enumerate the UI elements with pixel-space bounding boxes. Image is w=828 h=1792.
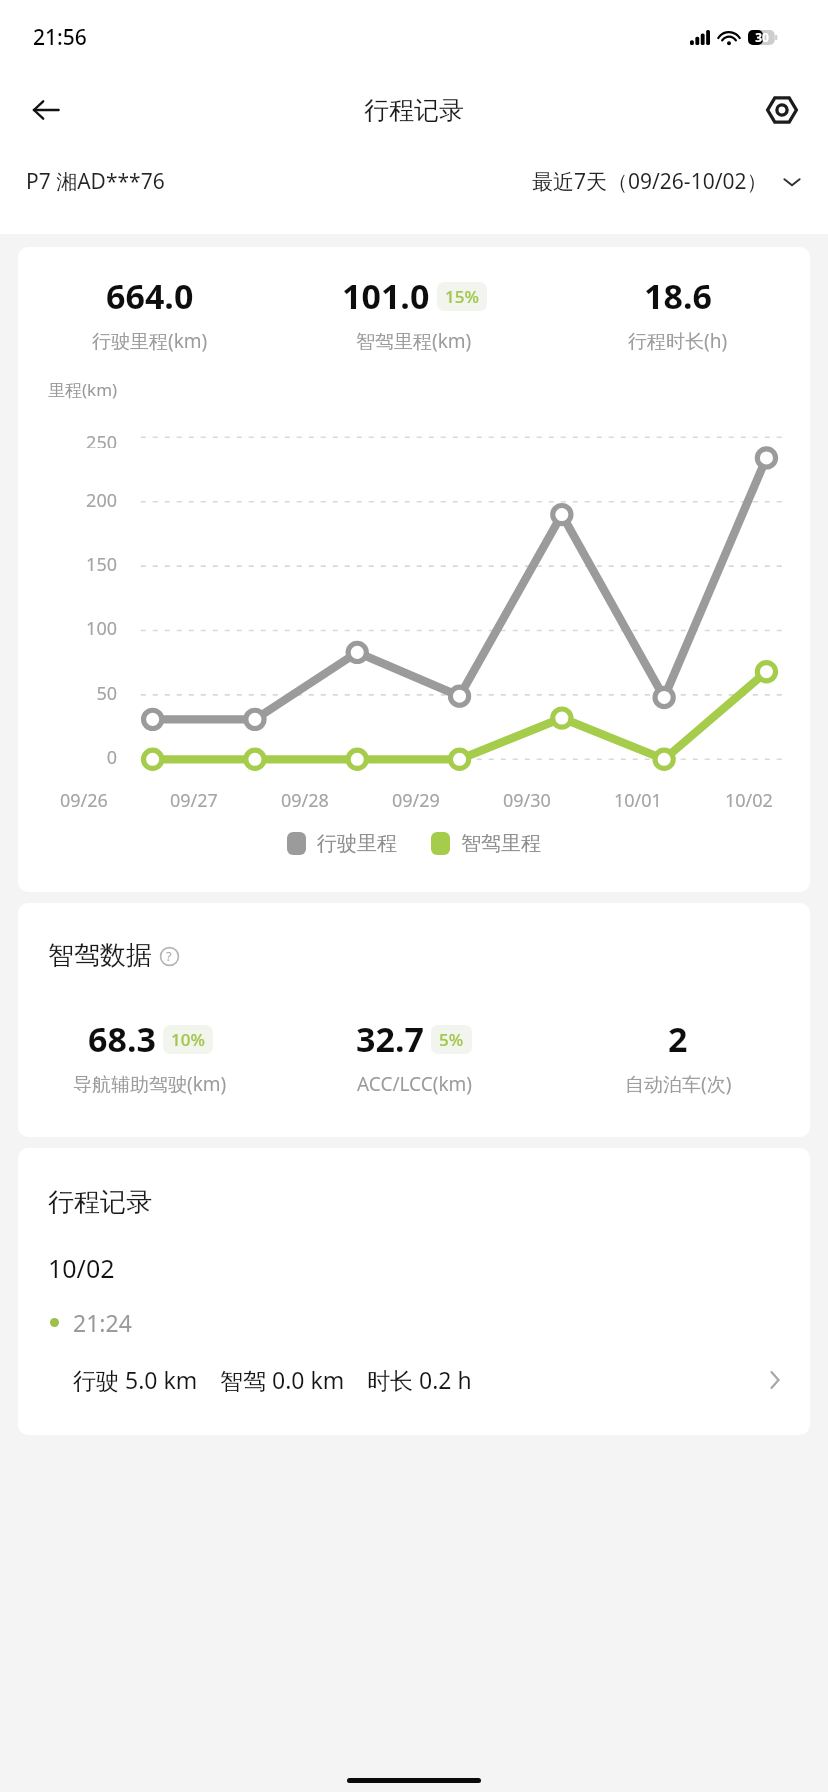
button[interactable]: 最近7天（09/26-10/02） bbox=[532, 167, 802, 196]
staticText: 21:24 bbox=[73, 1307, 132, 1338]
staticText: 09/28 bbox=[281, 788, 329, 813]
staticText: 664.0 bbox=[106, 273, 194, 319]
staticText: 0 bbox=[106, 745, 117, 770]
staticText: 行程记录 bbox=[48, 1186, 152, 1219]
staticText: 行驶 5.0 km bbox=[73, 1364, 198, 1395]
staticText: ACC/LCC(km) bbox=[357, 1071, 472, 1097]
staticText: 30 bbox=[755, 29, 769, 45]
staticText: 10/02 bbox=[48, 1251, 115, 1285]
staticText: 15% bbox=[445, 285, 479, 308]
staticText: ? bbox=[166, 947, 172, 965]
staticText: 32.7 bbox=[356, 1016, 424, 1062]
staticText: 21:56 bbox=[33, 23, 87, 52]
staticText: 68.3 bbox=[88, 1016, 156, 1062]
staticText: 150 bbox=[86, 552, 117, 577]
staticText: 智驾 0.0 km bbox=[220, 1364, 345, 1395]
staticText: 导航辅助驾驶(km) bbox=[73, 1071, 227, 1097]
staticText: 10/01 bbox=[614, 788, 662, 813]
staticText: 行程记录 bbox=[364, 95, 464, 126]
staticText: 250 bbox=[86, 430, 117, 448]
staticText: P7 湘AD***76 bbox=[26, 167, 165, 196]
staticText: 里程(km) bbox=[48, 378, 118, 401]
staticText: 5% bbox=[439, 1028, 464, 1051]
staticText: 10% bbox=[171, 1028, 205, 1051]
staticText: 行驶里程 bbox=[317, 831, 397, 856]
button[interactable]: 设置 bbox=[756, 84, 808, 136]
staticText: 09/30 bbox=[503, 788, 551, 813]
staticText: 智驾数据 bbox=[48, 939, 152, 972]
staticText: 时长 0.2 h bbox=[367, 1364, 472, 1395]
button[interactable]: 21:24 bbox=[18, 1307, 810, 1395]
staticText: 100 bbox=[86, 616, 117, 641]
staticText: 50 bbox=[96, 681, 117, 706]
staticText: 行程时长(h) bbox=[628, 328, 728, 354]
staticText: 行驶里程(km) bbox=[92, 328, 208, 354]
staticText: 2 bbox=[668, 1016, 688, 1062]
button[interactable]: 帮助 bbox=[156, 943, 182, 969]
staticText: 09/26 bbox=[60, 788, 108, 813]
staticText: 200 bbox=[86, 488, 117, 513]
staticText: 最近7天（09/26-10/02） bbox=[532, 167, 768, 196]
staticText: 18.6 bbox=[644, 273, 712, 319]
staticText: 智驾里程 bbox=[461, 831, 541, 856]
staticText: 智驾里程(km) bbox=[356, 328, 472, 354]
staticText: 09/27 bbox=[170, 788, 218, 813]
staticText: 09/29 bbox=[392, 788, 440, 813]
staticText: 101.0 bbox=[342, 273, 430, 319]
button[interactable]: 返回 bbox=[18, 82, 74, 138]
staticText: 10/02 bbox=[725, 788, 773, 813]
staticText: 自动泊车(次) bbox=[625, 1071, 732, 1097]
